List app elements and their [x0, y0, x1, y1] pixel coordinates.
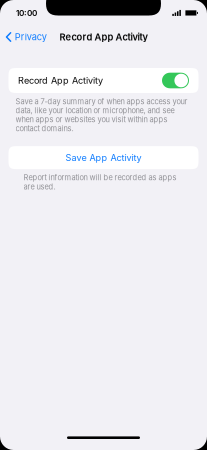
staticText: Report information will be recorded as a…	[23, 173, 176, 191]
button[interactable]: Save App Activity	[8, 146, 198, 169]
staticText: Save a 7-day summary of when apps access…	[15, 97, 187, 133]
staticText: Record App Activity	[59, 31, 147, 43]
button[interactable]: Privacy	[0, 29, 52, 45]
staticText: 10:00	[16, 8, 37, 18]
staticText: Save App Activity	[65, 152, 141, 163]
staticText: Record App Activity	[18, 75, 103, 86]
staticText: Privacy	[15, 31, 47, 42]
button[interactable]: Record App Activity	[8, 68, 198, 93]
